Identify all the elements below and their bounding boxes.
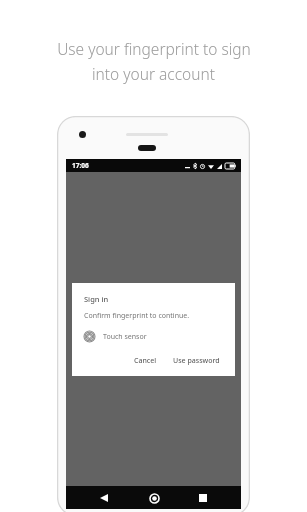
other: Fingerprint — [84, 331, 95, 342]
staticText: Confirm fingerprint to continue. — [84, 311, 190, 321]
staticText: Cancel — [134, 356, 157, 366]
button[interactable]: Home — [143, 487, 165, 509]
button[interactable]: Use password — [168, 352, 225, 370]
button[interactable]: Back — [93, 487, 115, 509]
staticText: Use your fingerprint to sign — [57, 38, 251, 59]
button[interactable]: Recent apps — [192, 487, 214, 509]
staticText: Use password — [173, 356, 220, 366]
staticText: 17:06 — [72, 161, 89, 170]
staticText: Sign in — [84, 294, 109, 304]
staticText: Touch sensor — [103, 332, 147, 342]
button[interactable]: Cancel — [129, 352, 162, 370]
staticText: into your account — [92, 63, 215, 84]
